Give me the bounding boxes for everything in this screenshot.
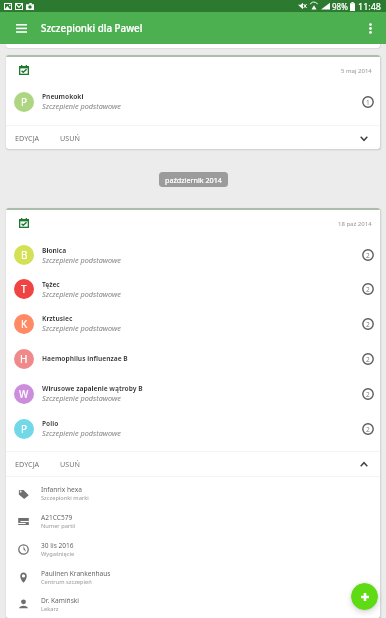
staticText: Wygaśnięcie <box>41 550 75 558</box>
staticText: EDYCJA <box>15 133 40 143</box>
staticText: 98% <box>332 1 348 12</box>
button[interactable]: Dawka 2 <box>358 314 378 334</box>
staticText: P <box>21 422 28 436</box>
button[interactable]: Dawka 2 <box>358 419 378 439</box>
button[interactable]: Więcej opcji <box>358 16 382 40</box>
button[interactable]: Infanrix hexa <box>6 479 380 507</box>
staticText: 18 paź 2014 <box>338 220 372 228</box>
staticText: 2 <box>366 390 370 399</box>
staticText: Szczepienie podstawowe <box>42 255 121 265</box>
staticText: A21CC579 <box>41 513 73 522</box>
button[interactable]: Dawka 2 <box>358 245 378 265</box>
staticText: Szczepienie podstawowe <box>42 323 121 333</box>
button[interactable]: Paulinen Krankenhaus <box>6 563 380 591</box>
staticText: P <box>21 95 28 109</box>
staticText: 2 <box>366 285 370 294</box>
staticText: Tężec <box>42 280 60 289</box>
staticText: 5 maj 2014 <box>341 67 372 75</box>
button[interactable]: Zwiń <box>356 456 372 472</box>
staticText: Szczepionki dla Pawel <box>41 22 143 35</box>
staticText: K <box>21 317 28 331</box>
button[interactable]: P <box>6 84 380 119</box>
staticText: Szczepionki marki <box>41 494 89 502</box>
button[interactable]: Menu <box>9 16 33 40</box>
staticText: 2 <box>366 425 370 434</box>
button[interactable]: Dawka 2 <box>358 384 378 404</box>
button[interactable]: H <box>6 341 380 376</box>
staticText: Pneumokoki <box>42 92 84 101</box>
staticText: Szczepienie podstawowe <box>42 393 121 403</box>
button[interactable]: USUŃ <box>50 454 90 474</box>
staticText: 11:48 <box>358 0 382 12</box>
staticText: Krztusiec <box>42 314 73 323</box>
staticText: 2 <box>366 355 370 364</box>
staticText: USUŃ <box>60 133 80 143</box>
button[interactable]: 30 lis 2016 <box>6 535 380 563</box>
staticText: B <box>21 248 28 262</box>
button[interactable]: EDYCJA <box>6 128 50 148</box>
staticText: T <box>21 282 27 296</box>
button[interactable]: Dr. Kamiński <box>6 591 380 618</box>
button[interactable]: Dawka 2 <box>358 279 378 299</box>
staticText: Dr. Kamiński <box>41 596 80 605</box>
staticText: H <box>20 352 28 366</box>
button[interactable]: K <box>6 306 380 341</box>
staticText: Błonica <box>42 246 67 255</box>
button[interactable]: T <box>6 272 380 306</box>
button[interactable]: USUŃ <box>50 128 90 148</box>
button[interactable]: Dodaj szczepienie <box>351 583 378 610</box>
button[interactable]: Dawka 1 <box>358 92 378 112</box>
staticText: 2 <box>366 251 370 260</box>
button[interactable]: Rozwiń <box>356 130 372 146</box>
staticText: Infanrix hexa <box>41 485 82 494</box>
staticText: Szczepienie podstawowe <box>42 289 121 299</box>
staticText: Numer partii <box>41 522 76 530</box>
staticText: Polio <box>42 419 59 428</box>
staticText: 30 lis 2016 <box>41 541 74 550</box>
staticText: Lekarz <box>41 605 59 613</box>
button[interactable]: B <box>6 238 380 272</box>
staticText: Paulinen Krankenhaus <box>41 569 111 578</box>
button[interactable]: Dawka 2 <box>358 349 378 369</box>
button[interactable]: A21CC579 <box>6 507 380 535</box>
staticText: 1 <box>366 98 370 107</box>
staticText: październik 2014 <box>165 175 222 185</box>
staticText: Szczepienie podstawowe <box>42 101 121 111</box>
button[interactable]: P <box>6 411 380 446</box>
button[interactable]: EDYCJA <box>6 454 50 474</box>
staticText: 2 <box>366 320 370 329</box>
staticText: USUŃ <box>60 459 80 469</box>
staticText: W <box>19 387 29 401</box>
staticText: Centrum szczepień <box>41 578 92 586</box>
button[interactable]: W <box>6 376 380 411</box>
staticText: Szczepienie podstawowe <box>42 428 121 438</box>
staticText: EDYCJA <box>15 459 40 469</box>
staticText: Haemophilus influenzae B <box>42 354 128 363</box>
button[interactable]: październik 2014 <box>159 172 228 187</box>
staticText: Wirusowe zapalenie wątroby B <box>42 384 143 393</box>
